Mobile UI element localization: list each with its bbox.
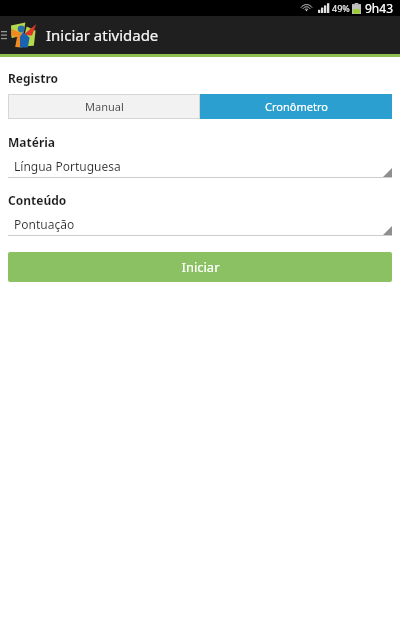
button[interactable]: Pontuação xyxy=(8,213,392,236)
staticText: Pontuação xyxy=(14,216,75,232)
staticText: 49% xyxy=(332,2,350,14)
staticText: Iniciar atividade xyxy=(46,25,159,45)
staticText: Língua Portuguesa xyxy=(14,158,121,174)
staticText: Manual xyxy=(85,99,124,114)
button[interactable]: Cronômetro xyxy=(200,94,392,119)
staticText: Iniciar xyxy=(181,258,220,276)
staticText: Cronômetro xyxy=(265,99,328,114)
staticText: Matéria xyxy=(8,134,56,150)
staticText: 9h43 xyxy=(365,0,394,16)
button[interactable]: Língua Portuguesa xyxy=(8,155,392,178)
staticText: Registro xyxy=(8,70,59,86)
staticText: Conteúdo xyxy=(8,192,67,208)
button[interactable]: Menu xyxy=(0,16,8,54)
button[interactable]: Iniciar xyxy=(8,252,392,282)
button[interactable]: Manual xyxy=(8,94,200,119)
